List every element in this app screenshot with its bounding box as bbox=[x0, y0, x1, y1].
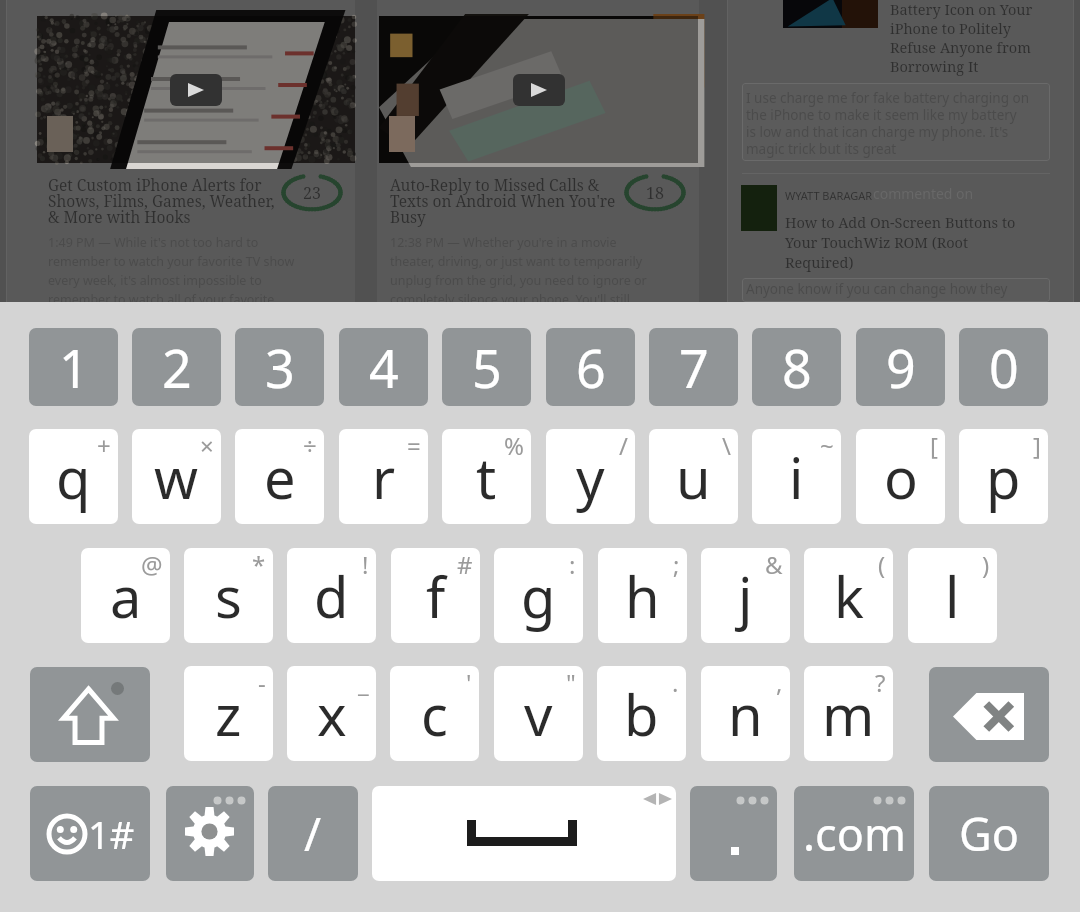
button[interactable]: b bbox=[597, 666, 686, 761]
staticText: * bbox=[252, 548, 266, 581]
staticText: j bbox=[738, 558, 753, 634]
button[interactable]: 6 bbox=[546, 328, 635, 406]
button[interactable]: 9 bbox=[856, 328, 945, 406]
button[interactable]: p bbox=[959, 429, 1048, 524]
staticText: f bbox=[426, 558, 446, 634]
button[interactable]: v bbox=[494, 666, 583, 761]
button[interactable]: n bbox=[701, 666, 790, 761]
staticText: v bbox=[524, 676, 553, 752]
staticText: @ bbox=[141, 548, 163, 581]
staticText: / bbox=[304, 802, 322, 865]
staticText: s bbox=[215, 558, 242, 634]
staticText: . bbox=[672, 666, 679, 699]
staticText: w bbox=[154, 439, 199, 515]
button[interactable]: Go bbox=[929, 786, 1049, 881]
staticText: c bbox=[421, 676, 448, 752]
staticText: 12:38 PM — Whether you're in a movie the… bbox=[390, 234, 647, 308]
staticText: 23 bbox=[303, 182, 321, 204]
staticText: 2 bbox=[162, 332, 192, 403]
button[interactable]: s bbox=[184, 548, 273, 643]
button[interactable]: m bbox=[804, 666, 893, 761]
button[interactable]: t bbox=[442, 429, 531, 524]
button[interactable]: d bbox=[287, 548, 376, 643]
button[interactable]: 4 bbox=[339, 328, 428, 406]
button[interactable]: h bbox=[598, 548, 687, 643]
button[interactable]: g bbox=[494, 548, 583, 643]
staticText: 5 bbox=[472, 332, 502, 403]
staticText: .com bbox=[803, 803, 906, 864]
button[interactable]: q bbox=[29, 429, 118, 524]
staticText: y bbox=[576, 439, 605, 515]
button[interactable]: f bbox=[391, 548, 480, 643]
staticText: x bbox=[317, 676, 347, 752]
staticText: × bbox=[200, 429, 214, 462]
staticText: % bbox=[504, 429, 524, 462]
button[interactable]: / bbox=[268, 786, 358, 881]
button[interactable]: Emoji and symbols bbox=[30, 786, 150, 881]
staticText: Go bbox=[959, 803, 1019, 864]
staticText: t bbox=[476, 439, 497, 515]
button[interactable]: y bbox=[546, 429, 635, 524]
staticText: - bbox=[258, 666, 266, 699]
button[interactable]: w bbox=[132, 429, 221, 524]
button[interactable]: e bbox=[235, 429, 324, 524]
staticText: ! bbox=[362, 548, 369, 581]
staticText: 1:49 PM — While it's not too hard to rem… bbox=[48, 234, 295, 308]
button[interactable]: 8 bbox=[752, 328, 841, 406]
staticText: ' bbox=[466, 666, 472, 699]
staticText: e bbox=[264, 439, 296, 515]
staticText: # bbox=[457, 548, 473, 581]
staticText: g bbox=[521, 558, 556, 634]
staticText: WYATT BARAGAR bbox=[785, 188, 873, 203]
button[interactable]: c bbox=[390, 666, 479, 761]
button[interactable]: 2 bbox=[132, 328, 221, 406]
button[interactable]: 3 bbox=[235, 328, 324, 406]
button[interactable]: j bbox=[701, 548, 790, 643]
button[interactable]: a bbox=[81, 548, 170, 643]
button[interactable]: o bbox=[856, 429, 945, 524]
button[interactable]: Settings bbox=[166, 786, 254, 881]
staticText: n bbox=[728, 676, 763, 752]
staticText: 1 bbox=[59, 332, 89, 403]
staticText: a bbox=[110, 558, 142, 634]
staticText: Auto-Reply to Missed Calls & Texts on An… bbox=[390, 174, 616, 227]
staticText: o bbox=[884, 439, 918, 515]
button[interactable]: k bbox=[804, 548, 893, 643]
button[interactable]: Backspace bbox=[929, 667, 1049, 762]
staticText: \ bbox=[722, 429, 731, 462]
button[interactable]: Auto-Reply to Missed Calls & Texts on An… bbox=[377, 0, 699, 302]
button[interactable]: z bbox=[184, 666, 273, 761]
button[interactable]: l bbox=[908, 548, 997, 643]
button[interactable]: 0 bbox=[959, 328, 1048, 406]
button[interactable]: 7 bbox=[649, 328, 738, 406]
staticText: [ bbox=[930, 429, 938, 462]
staticText: d bbox=[314, 558, 349, 634]
button[interactable]: Space bbox=[372, 786, 676, 881]
staticText: q bbox=[56, 439, 91, 515]
button[interactable]: Get Custom iPhone Alerts for Shows, Film… bbox=[7, 0, 355, 302]
staticText: I use charge me for fake battery chargin… bbox=[746, 89, 1029, 158]
staticText: 6 bbox=[576, 332, 606, 403]
staticText: 9 bbox=[886, 332, 916, 403]
staticText: commented on bbox=[873, 184, 974, 203]
button[interactable]: x bbox=[287, 666, 376, 761]
button[interactable]: .com bbox=[794, 786, 914, 881]
button[interactable]: Period bbox=[690, 786, 777, 881]
staticText: ? bbox=[875, 666, 886, 699]
staticText: " bbox=[566, 666, 576, 699]
button[interactable]: How to Add On-Screen Buttons to Your Tou… bbox=[785, 212, 1016, 272]
button[interactable]: Shift bbox=[30, 667, 150, 762]
staticText: ( bbox=[878, 548, 886, 581]
button[interactable]: u bbox=[649, 429, 738, 524]
staticText: u bbox=[676, 439, 711, 515]
staticText: b bbox=[624, 676, 659, 752]
button[interactable]: Battery Icon on Your iPhone to Politely … bbox=[890, 0, 1033, 76]
staticText: l bbox=[945, 558, 960, 634]
staticText: = bbox=[407, 429, 421, 462]
button[interactable]: i bbox=[752, 429, 841, 524]
staticText: & bbox=[765, 548, 783, 581]
button[interactable]: r bbox=[339, 429, 428, 524]
button[interactable]: 5 bbox=[442, 328, 531, 406]
button[interactable]: 1 bbox=[29, 328, 118, 406]
staticText: ~ bbox=[820, 429, 834, 462]
